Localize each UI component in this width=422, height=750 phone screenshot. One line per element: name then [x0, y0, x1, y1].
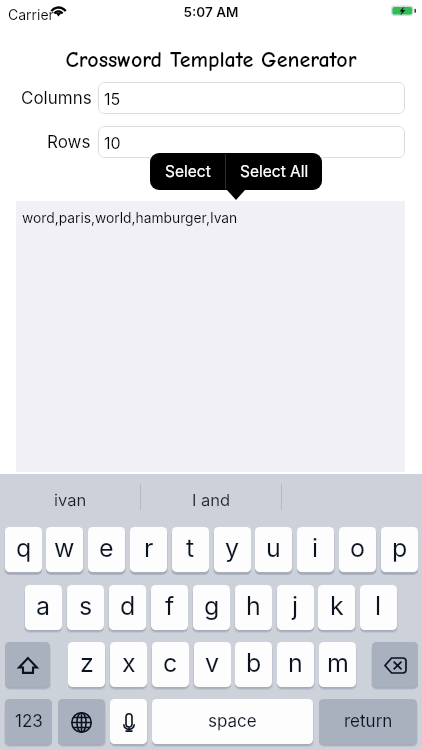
button[interactable]: m: [319, 642, 356, 687]
button[interactable]: Backspace: [372, 642, 418, 687]
button[interactable]: Shift: [5, 642, 50, 687]
staticText: v: [205, 648, 220, 678]
staticText: j: [292, 591, 299, 621]
button[interactable]: g: [193, 585, 230, 630]
button[interactable]: q: [5, 527, 42, 572]
button[interactable]: j: [277, 585, 314, 630]
staticText: Crossword Template Generator: [0, 47, 422, 72]
staticText: o: [350, 533, 365, 563]
staticText: r: [144, 533, 154, 563]
staticText: Columns: [21, 88, 92, 109]
staticText: 10: [104, 133, 121, 152]
button[interactable]: i: [297, 527, 334, 572]
button[interactable]: I and: [141, 479, 281, 521]
button[interactable]: z: [68, 642, 105, 687]
button[interactable]: a: [25, 585, 62, 630]
staticText: p: [392, 533, 408, 563]
button[interactable]: v: [194, 642, 231, 687]
button[interactable]: w: [46, 527, 83, 572]
button[interactable]: n: [277, 642, 314, 687]
button[interactable]: 15: [98, 82, 405, 114]
button[interactable]: Switch keyboard: [58, 699, 105, 744]
button[interactable]: word,paris,world,hamburger,Ivan: [16, 201, 405, 472]
staticText: return: [344, 711, 393, 732]
button[interactable]: b: [235, 642, 272, 687]
staticText: Select All: [240, 162, 309, 181]
button[interactable]: t: [172, 527, 209, 572]
staticText: f: [165, 591, 175, 621]
staticText: y: [225, 533, 240, 563]
staticText: k: [330, 591, 344, 621]
button[interactable]: space: [152, 699, 313, 744]
button[interactable]: u: [255, 527, 292, 572]
staticText: q: [16, 533, 32, 563]
button[interactable]: o: [339, 527, 376, 572]
button[interactable]: e: [88, 527, 125, 572]
button[interactable]: y: [214, 527, 251, 572]
staticText: h: [246, 591, 261, 621]
button[interactable]: Select: [150, 153, 225, 190]
button[interactable]: k: [318, 585, 355, 630]
staticText: z: [80, 648, 94, 678]
staticText: b: [246, 648, 262, 678]
staticText: Rows: [47, 132, 91, 153]
button[interactable]: ivan: [0, 479, 140, 521]
staticText: w: [54, 533, 75, 563]
staticText: s: [79, 591, 93, 621]
button[interactable]: f: [151, 585, 188, 630]
staticText: Select: [165, 162, 211, 181]
staticText: e: [99, 533, 114, 563]
button[interactable]: Dictate: [110, 699, 147, 744]
staticText: space: [208, 711, 257, 732]
button[interactable]: c: [152, 642, 189, 687]
staticText: a: [36, 591, 51, 621]
button[interactable]: 123: [5, 699, 52, 744]
button[interactable]: h: [235, 585, 272, 630]
staticText: 15: [104, 89, 121, 108]
staticText: d: [120, 591, 136, 621]
staticText: n: [288, 648, 303, 678]
staticText: t: [186, 533, 195, 563]
button[interactable]: l: [360, 585, 397, 630]
staticText: I and: [192, 490, 231, 510]
staticText: l: [375, 591, 382, 621]
staticText: Carrier: [8, 6, 54, 23]
button[interactable]: Select All: [226, 153, 322, 190]
button[interactable]: r: [130, 527, 167, 572]
staticText: c: [163, 648, 178, 678]
staticText: 123: [15, 711, 43, 732]
staticText: 5:07 AM: [0, 4, 422, 20]
staticText: i: [312, 533, 319, 563]
staticText: ivan: [54, 490, 87, 510]
button[interactable]: d: [109, 585, 146, 630]
staticText: u: [266, 533, 281, 563]
button[interactable]: x: [110, 642, 147, 687]
staticText: m: [327, 648, 349, 678]
button[interactable]: s: [67, 585, 104, 630]
staticText: x: [122, 648, 136, 678]
staticText: g: [204, 591, 220, 621]
button[interactable]: return: [319, 699, 417, 744]
button[interactable]: p: [381, 527, 418, 572]
button[interactable]: 10: [98, 126, 405, 158]
staticText: word,paris,world,hamburger,Ivan: [22, 210, 238, 227]
